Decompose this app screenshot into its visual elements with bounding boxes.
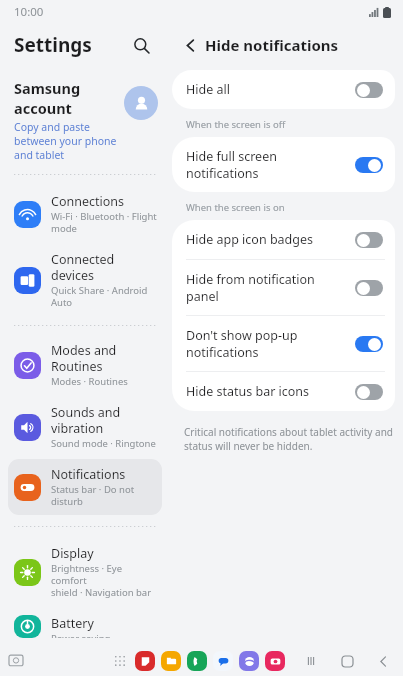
staticText: When the screen is off xyxy=(186,118,286,131)
button[interactable]: Sounds and vibration xyxy=(8,397,162,457)
button[interactable]: Modes and Routines xyxy=(8,335,162,395)
button[interactable]: Toggle off xyxy=(355,82,383,98)
staticText: Hide from notification panel xyxy=(186,271,349,304)
button[interactable]: Connections xyxy=(8,186,162,242)
button[interactable]: Hide from notification panel xyxy=(172,260,395,315)
button[interactable]: Hide app icon badges xyxy=(172,220,395,259)
button[interactable]: Samsung xyxy=(0,66,170,162)
staticText: Status bar · Do not disturb xyxy=(51,483,158,508)
staticText: When the screen is on xyxy=(186,201,285,214)
button[interactable]: Toggle off xyxy=(355,280,383,296)
staticText: Sound mode · Ringtone xyxy=(51,437,156,450)
staticText: Don't show pop-up notifications xyxy=(186,327,349,360)
button[interactable]: Camera xyxy=(265,651,285,671)
button[interactable]: Notifications xyxy=(8,459,162,515)
button[interactable]: Toggle on xyxy=(355,336,383,352)
button[interactable]: My Files xyxy=(161,651,181,671)
staticText: Modes · Routines xyxy=(51,375,128,388)
staticText: Connected devices xyxy=(51,251,158,284)
staticText: Connections xyxy=(51,193,124,210)
button[interactable]: Toggle off xyxy=(355,384,383,400)
button[interactable]: Toggle on xyxy=(355,157,383,173)
button[interactable]: Don't show pop-up notifications xyxy=(172,316,395,371)
staticText: Wi-Fi · Bluetooth · Flight mode xyxy=(51,210,157,235)
staticText: Copy and paste between your phone and ta… xyxy=(14,120,117,162)
button[interactable]: Hide all xyxy=(172,70,395,109)
staticText: Modes and Routines xyxy=(51,342,158,375)
button[interactable]: Display xyxy=(8,538,162,606)
staticText: account xyxy=(14,98,72,118)
staticText: Quick Share · Android Auto xyxy=(51,284,158,309)
staticText: Critical notifications about tablet acti… xyxy=(184,425,393,453)
staticText: Hide all xyxy=(186,81,349,98)
staticText: Samsung xyxy=(14,78,81,98)
button[interactable]: Recent apps xyxy=(5,650,27,672)
staticText: Display xyxy=(51,545,94,562)
button[interactable]: Back xyxy=(370,648,396,674)
button[interactable]: Search settings xyxy=(126,30,156,60)
staticText: Hide status bar icons xyxy=(186,383,349,400)
staticText: 10:00 xyxy=(14,4,44,20)
button[interactable]: Internet xyxy=(239,651,259,671)
button[interactable]: Connected devices xyxy=(8,244,162,316)
button[interactable]: Messages xyxy=(213,651,233,671)
button[interactable]: Toggle off xyxy=(355,232,383,248)
button[interactable]: Phone xyxy=(187,651,207,671)
button[interactable]: All apps xyxy=(110,651,130,671)
staticText: Hide notifications xyxy=(205,35,339,55)
staticText: Settings xyxy=(14,32,92,58)
staticText: Power saving · Charging xyxy=(51,632,158,638)
button[interactable]: Recents xyxy=(298,648,324,674)
staticText: Battery xyxy=(51,615,94,632)
button[interactable]: Hide status bar icons xyxy=(172,372,395,411)
staticText: Sounds and vibration xyxy=(51,404,121,437)
staticText: Hide app icon badges xyxy=(186,231,349,248)
button[interactable]: Battery xyxy=(8,608,162,645)
button[interactable]: Notes xyxy=(135,651,155,671)
staticText: Brightness · Eye comfort shield · Naviga… xyxy=(51,562,158,599)
staticText: Notifications xyxy=(51,466,126,483)
staticText: Hide full screen notifications xyxy=(186,148,349,181)
button[interactable]: Home xyxy=(334,648,360,674)
button[interactable]: Navigate back xyxy=(177,32,203,58)
button[interactable]: Hide full screen notifications xyxy=(172,137,395,192)
